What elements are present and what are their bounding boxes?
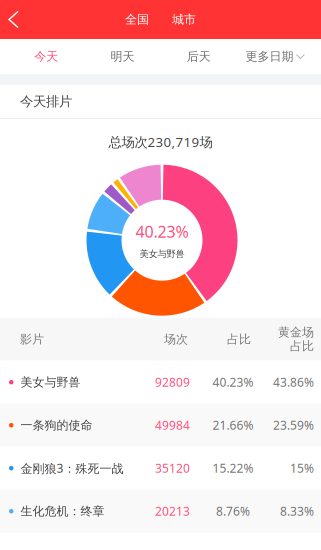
staticText: 今天	[34, 49, 58, 64]
staticText: 40.23%	[135, 221, 188, 242]
staticText: 8.33%	[280, 503, 314, 519]
staticText: 92809	[155, 374, 190, 390]
staticText: 8.76%	[216, 503, 250, 519]
staticText: 城市	[172, 12, 196, 27]
staticText: 35120	[155, 460, 190, 476]
staticText: 黄金场	[278, 325, 314, 340]
staticText: 20213	[155, 503, 190, 519]
staticText: 占比	[227, 332, 251, 346]
staticText: 49984	[155, 417, 190, 433]
staticText: 全国	[125, 12, 149, 27]
staticText: 美女与野兽	[139, 248, 184, 260]
staticText: 21.66%	[212, 417, 253, 433]
button[interactable]: 后天	[160, 39, 237, 74]
button[interactable]: 更多日期	[237, 39, 313, 74]
staticText: 总场次230,719场	[108, 133, 212, 151]
button[interactable]: 一条狗的使命	[0, 404, 321, 447]
button[interactable]: 明天	[84, 39, 160, 74]
button[interactable]: Back	[0, 0, 32, 39]
staticText: 占比	[290, 339, 314, 353]
staticText: 更多日期	[245, 49, 293, 64]
staticText: 后天	[187, 49, 211, 64]
staticText: 美女与野兽	[20, 375, 80, 389]
button[interactable]: 城市	[160, 0, 207, 39]
staticText: 一条狗的使命	[20, 418, 92, 432]
staticText: 今天排片	[20, 93, 72, 110]
staticText: 场次	[164, 332, 188, 346]
staticText: 43.86%	[273, 374, 314, 390]
button[interactable]: 美女与野兽	[0, 361, 321, 404]
button[interactable]: 金刚狼3：殊死一战	[0, 447, 321, 490]
staticText: 影片	[20, 332, 44, 346]
staticText: 15%	[290, 460, 314, 476]
staticText: 生化危机：终章	[20, 504, 104, 518]
staticText: 明天	[110, 49, 134, 64]
staticText: 23.59%	[273, 417, 314, 433]
staticText: 15.22%	[212, 460, 253, 476]
button[interactable]: 全国	[113, 0, 160, 39]
button[interactable]: 今天	[8, 39, 84, 74]
staticText: 金刚狼3：殊死一战	[20, 460, 123, 476]
staticText: 40.23%	[212, 374, 253, 390]
button[interactable]: 生化危机：终章	[0, 490, 321, 533]
